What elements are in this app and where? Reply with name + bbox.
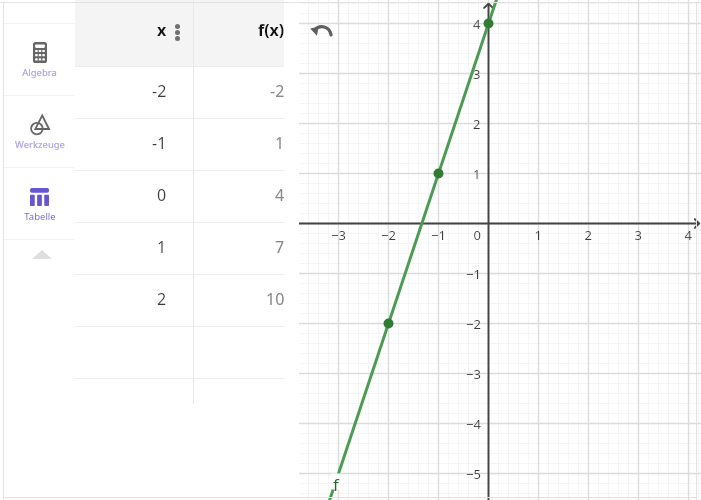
staticText: Werkzeuge xyxy=(15,138,65,151)
staticText: Algebra xyxy=(22,66,57,79)
staticText: -1 xyxy=(152,132,167,154)
staticText: 10 xyxy=(266,288,285,310)
button[interactable]: Collapse panel xyxy=(4,240,75,270)
button[interactable]: Undo xyxy=(307,18,335,46)
button[interactable]: -1 xyxy=(75,119,284,170)
staticText: 0 xyxy=(157,184,167,206)
button[interactable]: 0 xyxy=(75,171,284,222)
staticText: Tabelle xyxy=(24,210,56,223)
button[interactable]: -2 xyxy=(75,67,284,118)
staticText: 1 xyxy=(157,236,167,258)
button[interactable]: Werkzeuge xyxy=(4,96,75,167)
button[interactable]: 2 xyxy=(75,275,284,326)
staticText: 4 xyxy=(275,184,285,206)
staticText: x xyxy=(157,19,167,41)
button[interactable]: Column options xyxy=(167,11,188,53)
staticText: 7 xyxy=(275,236,285,258)
staticText: f(x) xyxy=(258,19,285,41)
button[interactable]: Tabelle xyxy=(4,168,75,239)
staticText: 1 xyxy=(275,132,285,154)
staticText: 2 xyxy=(157,288,167,310)
staticText: -2 xyxy=(270,80,285,102)
button[interactable]: Algebra xyxy=(4,24,75,95)
staticText: -2 xyxy=(152,80,167,102)
button[interactable]: 1 xyxy=(75,223,284,274)
